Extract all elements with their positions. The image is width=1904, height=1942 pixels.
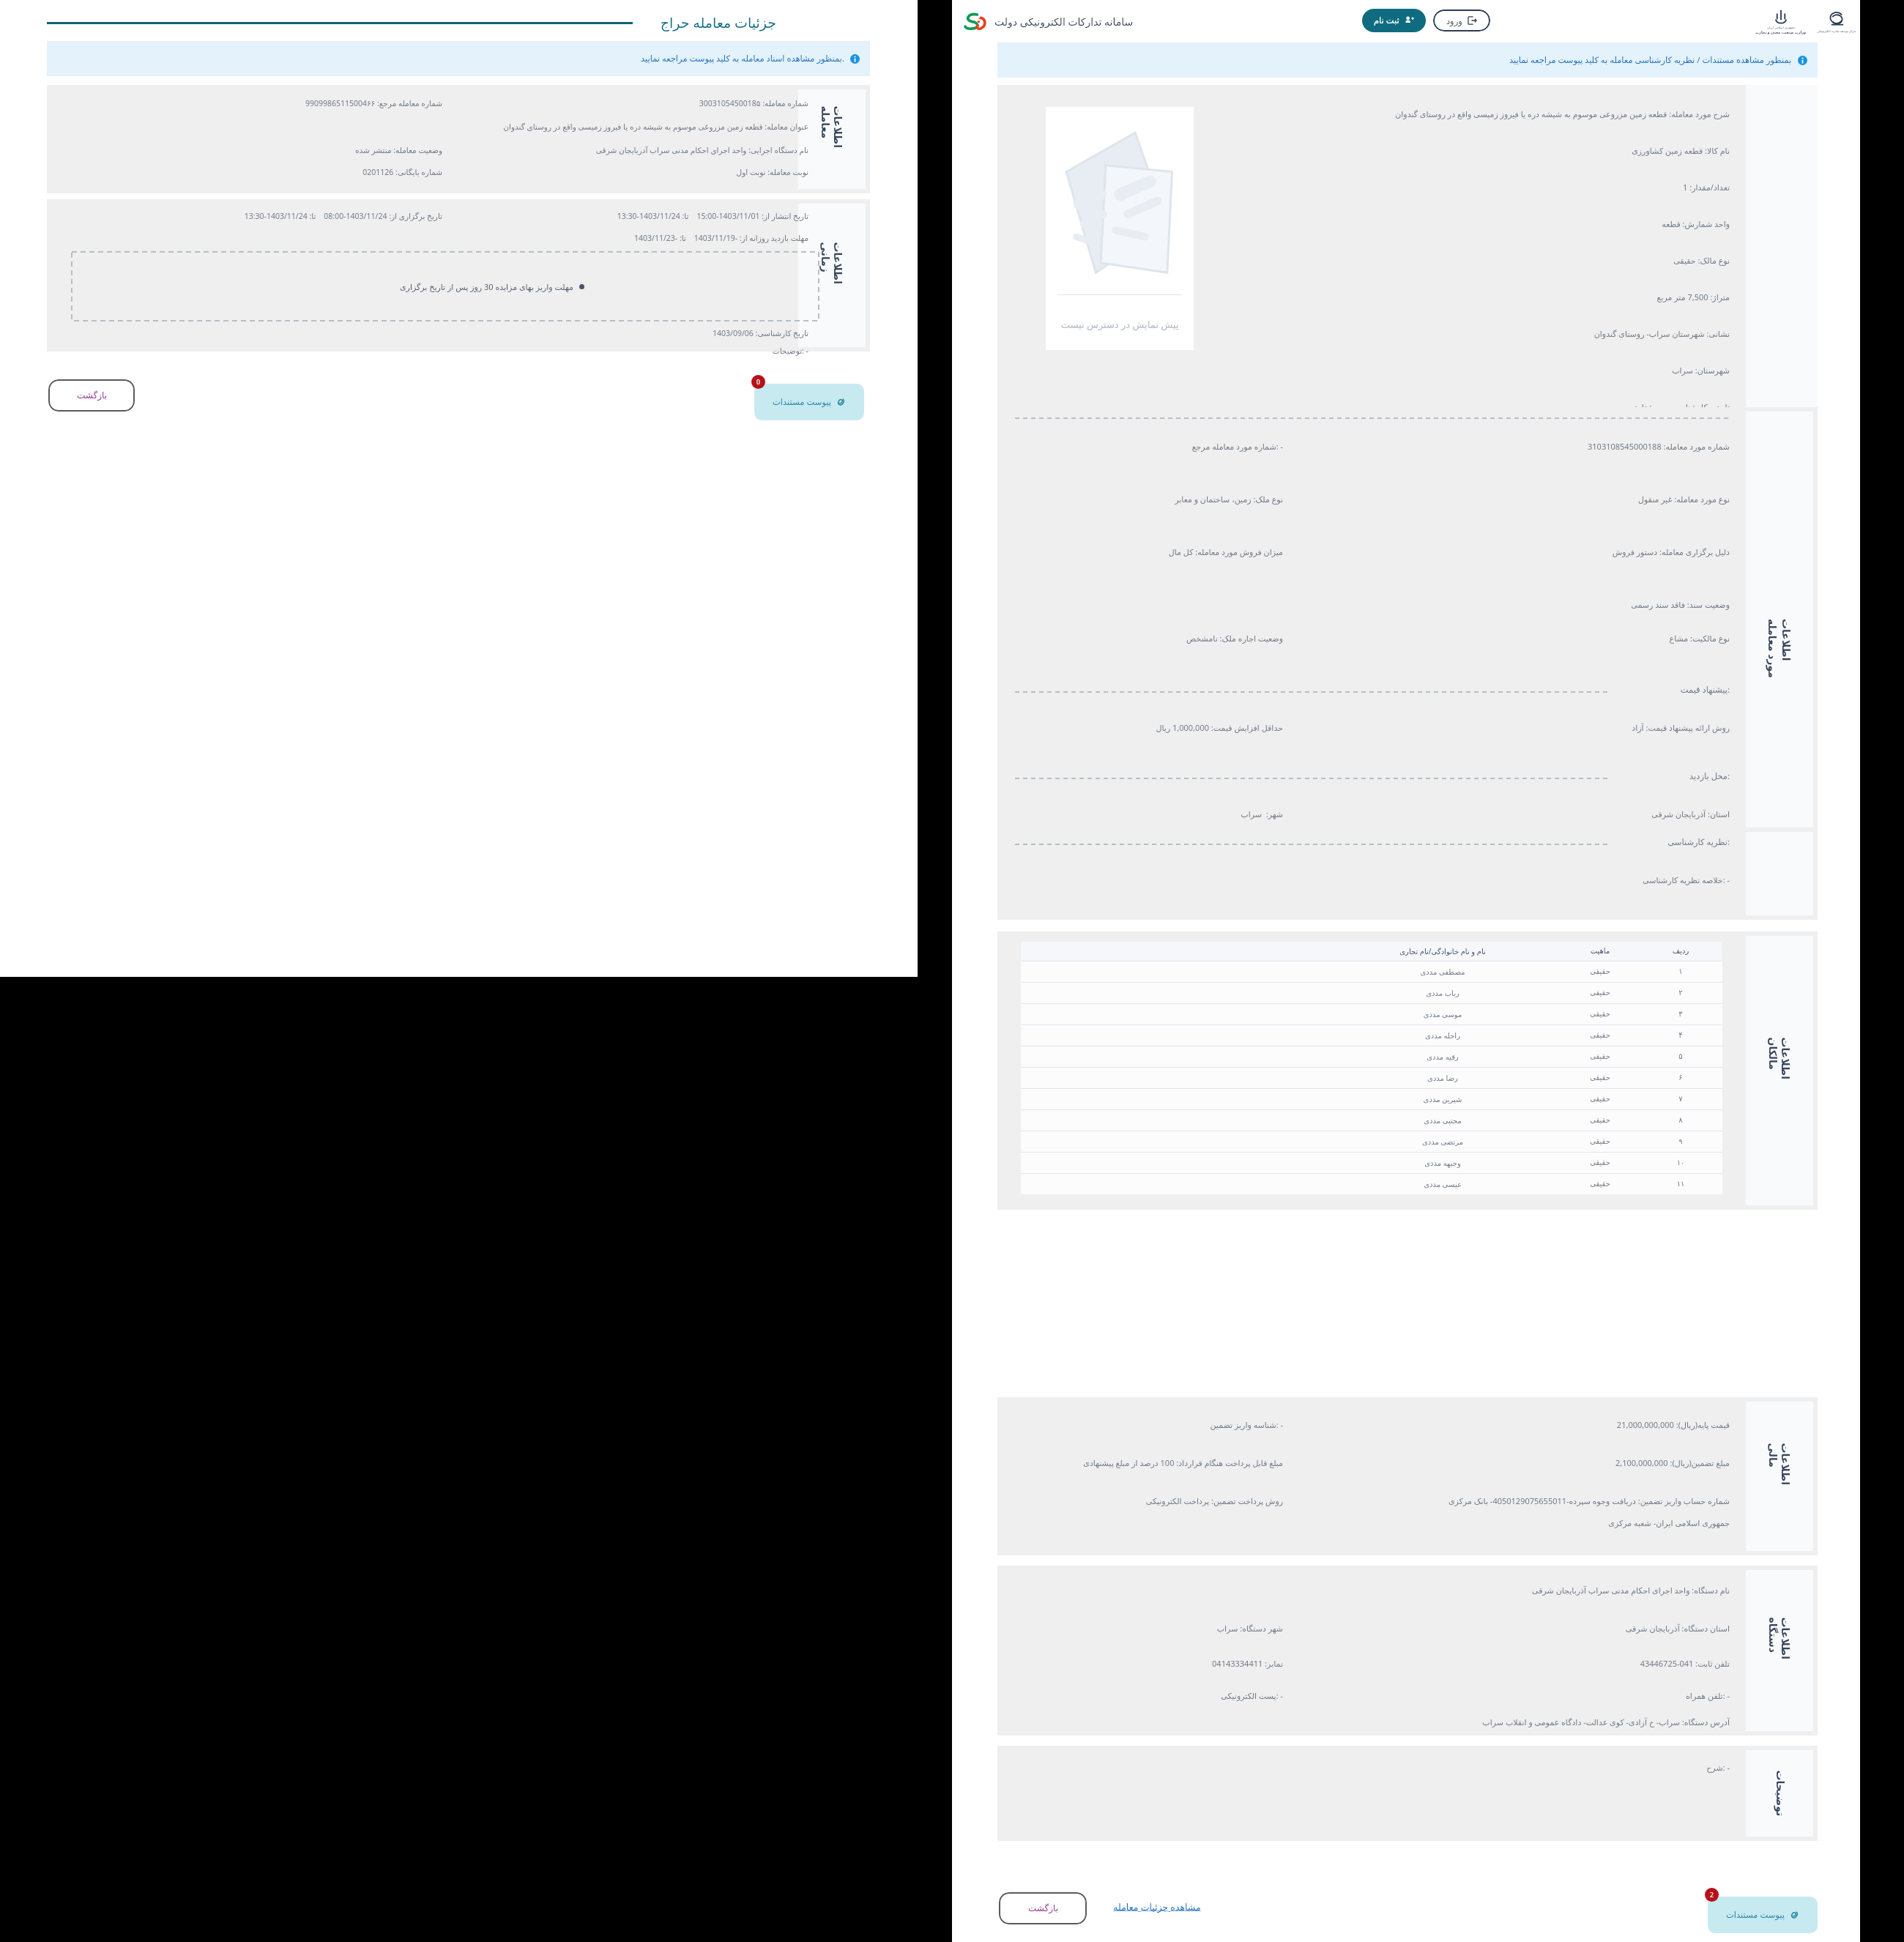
staticText: شماره حساب واریز تضمین: دریافت وجوه سپرد…	[1305, 1495, 1730, 1506]
staticText: ۱	[1648, 967, 1714, 976]
staticText: جمهوری اسلامی ایران	[1767, 26, 1796, 30]
staticText: عنوان معامله: قطعه زمین مزروعی موسوم به …	[164, 122, 808, 132]
staticText: ۶	[1648, 1074, 1714, 1082]
button[interactable]: ورود	[1433, 10, 1490, 31]
staticText: ورود	[1446, 16, 1462, 26]
staticText: جزئیات معامله حراج	[644, 13, 776, 32]
staticText: توضیحات	[1774, 1770, 1786, 1816]
staticText: ردیف	[1648, 947, 1714, 956]
button[interactable]: مشاهده جزئیات معامله	[1098, 1901, 1216, 1913]
staticText: جمهوری اسلامی ایران- شعبه مرکزی	[1378, 1517, 1730, 1528]
staticText: حقیقی	[1552, 1010, 1648, 1019]
staticText: شیرین مددی	[1333, 1094, 1552, 1104]
staticText: ۱۱	[1648, 1180, 1714, 1188]
staticText: مرکز توسعه تجارت الکترونیکی	[1817, 29, 1856, 34]
staticText: استان: آذربایجان شرقی	[1305, 808, 1730, 819]
staticText: رباب مددی	[1333, 988, 1552, 998]
staticText: عیسی مددی	[1333, 1179, 1552, 1189]
staticText: خلاصه نظریه کارشناسی: -	[1305, 874, 1730, 885]
staticText: حقیقی	[1552, 1095, 1648, 1104]
button[interactable]: آگهی الکترونیک قوه قضائیه	[1554, 435, 1730, 447]
button[interactable]: بازگشت	[48, 379, 135, 412]
staticText: وضعیت اجاره ملک: نامشخص	[1019, 633, 1283, 644]
button[interactable]: بازگشت	[999, 1892, 1087, 1924]
staticText: اطلاعات دستگاه	[1767, 1617, 1792, 1685]
staticText: حقیقی	[1552, 1116, 1648, 1125]
staticText: نظریه کارشناسی:	[1613, 836, 1730, 848]
staticText: نوع مالک: حقیقی	[1217, 255, 1730, 266]
staticText: مصطفی مددی	[1333, 967, 1552, 977]
staticText: تاریخ برگزاری از: 1403/11/24-08:00 تا: 1…	[62, 211, 442, 221]
staticText: پیش نمایش در دسترس نیست	[1053, 318, 1186, 331]
staticText: حقیقی	[1552, 1031, 1648, 1040]
staticText: شرح: -	[1305, 1762, 1730, 1773]
staticText: مهلت واریز بهای مزایده 30 روز پس از تاری…	[400, 281, 573, 292]
staticText: روش ارائه پیشنهاد قیمت: آزاد	[1305, 722, 1730, 733]
staticText: ۵	[1648, 1052, 1714, 1061]
staticText: نام دستگاه: واحد اجرای احکام مدنی سراب آ…	[1305, 1585, 1730, 1596]
staticText: شماره معامله: 3003105450018۵	[164, 98, 808, 108]
staticText: وضعیت سند: فاقد سند رسمی	[1305, 599, 1730, 610]
staticText: نمابر: 04143334411	[1019, 1658, 1283, 1669]
staticText: شناسه واریز تضمین: -	[1019, 1419, 1283, 1430]
staticText: ۸	[1648, 1116, 1714, 1125]
staticText: ۹	[1648, 1137, 1714, 1146]
staticText: مبلغ تضمین(ریال): 2,100,000,000	[1305, 1457, 1730, 1468]
staticText: اطلاعات مالی	[1767, 1443, 1792, 1510]
staticText: نوبت معامله: نوبت اول	[164, 167, 808, 177]
staticText: روش پرداخت تضمین: پرداخت الکترونیکی	[1019, 1495, 1283, 1506]
staticText: شماره مورد معامله مرجع: -	[1019, 441, 1283, 452]
staticText: حقیقی	[1552, 1074, 1648, 1082]
staticText: ۲	[1648, 989, 1714, 997]
other: لوگو ستاد	[962, 10, 987, 32]
staticText: شهر: سراب	[1019, 808, 1283, 819]
staticText: اطلاعات مورد معامله	[1766, 619, 1793, 686]
staticText: حداقل افزایش قیمت: 1,000,000 ریال	[1019, 722, 1283, 733]
staticText: ماهیت	[1552, 947, 1648, 956]
staticText: حقیقی	[1552, 967, 1648, 976]
staticText: قیمت پایه(ریال): 21,000,000,000	[1305, 1419, 1730, 1430]
staticText: پست الکترونیکی: -	[1019, 1690, 1283, 1701]
staticText: نوع مالکیت: مشاع	[1305, 633, 1730, 644]
staticText: ۱۰	[1648, 1158, 1714, 1167]
staticText: شرح مورد معامله: قطعه زمین مزروعی موسوم …	[1217, 108, 1730, 119]
staticText: مجتبی مددی	[1333, 1115, 1552, 1126]
staticText: اطلاعات مالکان	[1767, 1037, 1792, 1105]
staticText: نام دستگاه اجرایی: واحد اجرای احکام مدنی…	[164, 145, 808, 155]
staticText: وزارت صنعت، معدن و تجارت	[1755, 30, 1807, 35]
staticText: پیوست مستندات	[1726, 1909, 1785, 1921]
button[interactable]: پیوست مستندات	[754, 384, 864, 420]
staticText: حقیقی	[1552, 1137, 1648, 1146]
button[interactable]: پیوست مستندات	[1708, 1897, 1818, 1933]
staticText: دلیل برگزاری معامله: دستور فروش	[1305, 546, 1730, 557]
staticText: رضا مددی	[1333, 1073, 1552, 1083]
staticText: تلفن همراه: -	[1305, 1690, 1730, 1701]
button[interactable]: ثبت نام	[1362, 9, 1426, 32]
staticText: تعداد/مقدار: 1	[1217, 182, 1730, 193]
staticText: نام کالا: قطعه زمین کشاورزی	[1217, 145, 1730, 156]
staticText: وضعیت معامله: منتشر شده	[62, 145, 442, 155]
staticText: محل بازدید:	[1613, 770, 1730, 782]
staticText: بازگشت	[77, 390, 107, 401]
staticText: بمنظور مشاهده اسناد معامله به کلید پیوست…	[641, 53, 844, 64]
staticText: مبلغ قابل پرداخت هنگام قرارداد: 100 درصد…	[1019, 1457, 1283, 1468]
staticText: وجیهه مددی	[1333, 1158, 1552, 1168]
staticText: حقیقی	[1552, 989, 1648, 997]
staticText: شماره بایگانی: 0201126	[62, 167, 442, 177]
staticText: ۴	[1648, 1031, 1714, 1040]
staticText: شماره معامله مرجع: 99099865115004۶۶	[62, 98, 442, 108]
staticText: استان دستگاه: آذربایجان شرقی	[1305, 1623, 1730, 1634]
staticText: آدرس: شهرستان سراب -روستای گندوان	[1305, 844, 1730, 855]
staticText: آدرس دستگاه: سراب- خ آزادی- کوی عدالت- د…	[1305, 1716, 1730, 1727]
staticText: ۳	[1648, 1010, 1714, 1019]
staticText: اطلاعات معامله	[819, 106, 845, 173]
staticText: میزان فروش مورد معامله: کل مال	[1019, 546, 1283, 557]
staticText: ثبت نام	[1374, 15, 1399, 26]
staticText: نوع مورد معامله: غیر منقول	[1305, 494, 1730, 505]
staticText: حقیقی	[1552, 1158, 1648, 1167]
staticText: رقیه مددی	[1333, 1052, 1552, 1062]
staticText: تاییدیه کارشناس رسمی: دارد	[1217, 401, 1730, 412]
staticText: ۷	[1648, 1095, 1714, 1104]
staticText: بمنظور مشاهده مستندات / نظریه کارشناسی م…	[1509, 54, 1792, 66]
